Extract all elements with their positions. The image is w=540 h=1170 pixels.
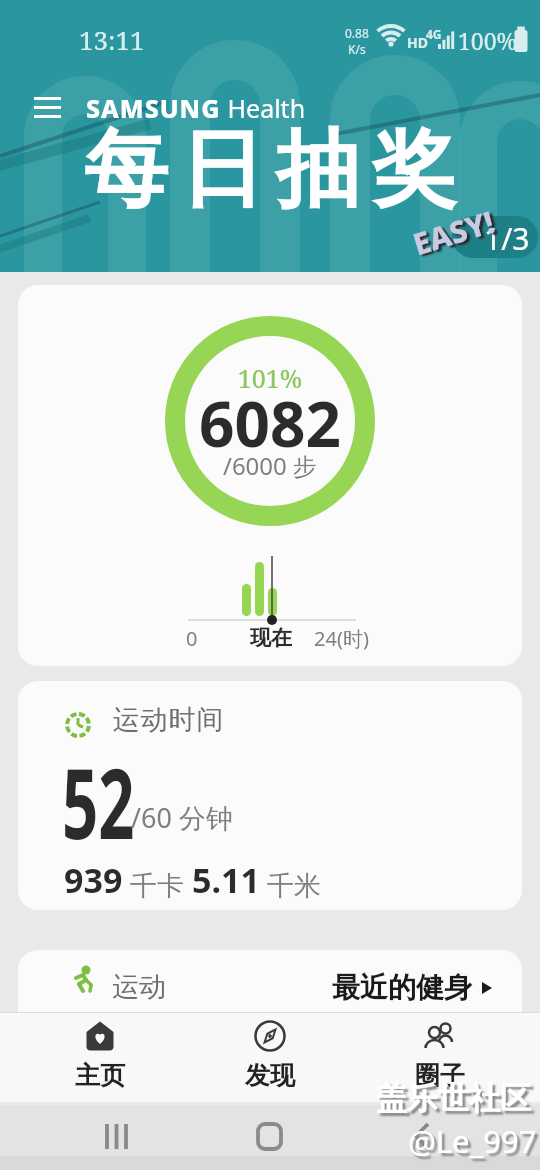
- staticText: 现在: [250, 625, 292, 651]
- staticText: K/s: [348, 41, 366, 57]
- button[interactable]: 最近的健身: [332, 970, 494, 1005]
- staticText: 每日抽奖: [6, 117, 540, 223]
- staticText: @Le_997: [408, 1120, 537, 1162]
- button[interactable]: 圈子: [395, 1020, 485, 1102]
- button[interactable]: 发现: [225, 1020, 315, 1102]
- staticText: 运动: [112, 970, 166, 1004]
- button[interactable]: 运动: [18, 950, 522, 1040]
- staticText: 52: [62, 736, 135, 867]
- staticText: 1/3: [484, 218, 530, 259]
- staticText: 6082: [18, 381, 522, 465]
- staticText: SAMSUNG: [86, 91, 221, 125]
- staticText: 100%: [458, 25, 518, 56]
- staticText: EASY!: [408, 201, 499, 264]
- staticText: 千卡: [123, 866, 192, 903]
- staticText: 0.88: [345, 25, 369, 41]
- button[interactable]: 主页: [55, 1020, 145, 1102]
- staticText: /60 分钟: [131, 799, 233, 836]
- staticText: 圈子: [415, 1060, 465, 1091]
- staticText: 千米: [260, 866, 322, 903]
- staticText: 盖乐世社区: [376, 1079, 531, 1118]
- staticText: 运动时间: [112, 703, 224, 737]
- button[interactable]: [34, 97, 61, 118]
- staticText: 主页: [75, 1060, 125, 1091]
- staticText: 0: [186, 625, 198, 652]
- staticText: 4G: [426, 26, 442, 42]
- staticText: 939: [64, 857, 123, 903]
- staticText: 13:11: [79, 22, 145, 57]
- staticText: 5.11: [192, 857, 260, 903]
- button[interactable]: [452, 216, 538, 258]
- staticText: 最近的健身: [332, 970, 472, 1005]
- staticText: /6000 步: [18, 449, 522, 482]
- staticText: 发现: [245, 1060, 295, 1091]
- staticText: Health: [221, 91, 306, 125]
- staticText: 24(时): [314, 625, 369, 652]
- button[interactable]: 101%: [18, 285, 522, 666]
- staticText: HD: [407, 33, 428, 52]
- button[interactable]: 运动时间: [18, 681, 522, 910]
- staticText: 101%: [18, 361, 522, 395]
